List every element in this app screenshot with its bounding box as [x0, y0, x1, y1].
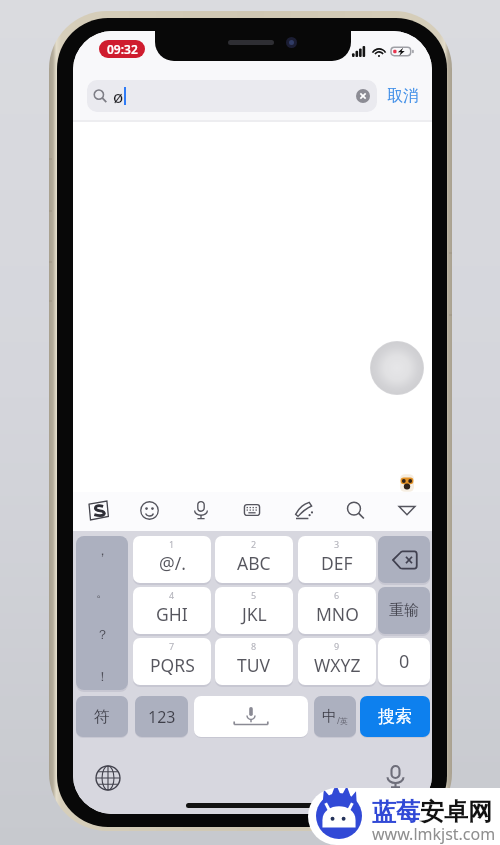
- staticText: www.lmkjst.com: [372, 823, 496, 845]
- staticText: 4: [169, 589, 175, 601]
- button[interactable]: WXYZ: [298, 638, 376, 685]
- button[interactable]: Keyboard tool: [287, 493, 321, 527]
- staticText: /英: [337, 715, 348, 726]
- staticText: 取消: [387, 86, 419, 106]
- button[interactable]: Keyboard tool: [184, 493, 218, 527]
- staticText: 搜索: [378, 706, 412, 727]
- button[interactable]: 0: [378, 638, 430, 685]
- staticText: 符: [94, 707, 110, 727]
- staticText: 1: [169, 538, 175, 550]
- button[interactable]: 搜索: [360, 696, 430, 737]
- button[interactable]: ø: [87, 80, 377, 112]
- button[interactable]: Switch keyboard language: [95, 765, 121, 791]
- button[interactable]: 123: [135, 696, 188, 737]
- staticText: ，: [96, 542, 109, 558]
- button[interactable]: 取消: [381, 83, 425, 109]
- staticText: 8: [251, 640, 257, 652]
- button[interactable]: Keyboard tool: [81, 493, 115, 527]
- staticText: 3: [334, 538, 340, 550]
- button[interactable]: Punctuation: [76, 536, 128, 690]
- staticText: 123: [148, 706, 176, 728]
- staticText: 6: [334, 589, 340, 601]
- staticText: 2: [251, 538, 257, 550]
- button[interactable]: Recording indicator: [99, 40, 145, 58]
- staticText: ABC: [237, 551, 271, 575]
- button[interactable]: Clear text: [356, 89, 370, 103]
- button[interactable]: 符: [76, 696, 128, 737]
- button[interactable]: Voice input: [383, 764, 408, 789]
- button[interactable]: Keyboard tool: [338, 493, 372, 527]
- staticText: 0: [399, 649, 410, 674]
- staticText: 中: [322, 707, 337, 726]
- staticText: @/.: [159, 551, 186, 575]
- button[interactable]: GHI: [133, 587, 211, 634]
- staticText: DEF: [321, 551, 353, 575]
- button[interactable]: @/.: [133, 536, 211, 583]
- staticText: 蓝莓: [372, 797, 420, 827]
- staticText: GHI: [156, 602, 188, 626]
- staticText: JKL: [242, 602, 267, 626]
- button[interactable]: Keyboard tool: [235, 493, 269, 527]
- staticText: ø: [113, 85, 124, 108]
- staticText: WXYZ: [314, 653, 361, 677]
- staticText: 。: [96, 584, 109, 600]
- staticText: PQRS: [150, 653, 195, 677]
- staticText: 安卓网: [420, 797, 492, 827]
- button[interactable]: Floating assistant ball: [370, 341, 424, 395]
- button[interactable]: Keyboard tool: [132, 493, 166, 527]
- staticText: TUV: [237, 653, 271, 677]
- button[interactable]: Space: [194, 696, 308, 737]
- staticText: 5: [251, 589, 257, 601]
- staticText: 7: [169, 640, 175, 652]
- button[interactable]: DEF: [298, 536, 376, 583]
- staticText: 重输: [389, 601, 419, 620]
- staticText: 09:32: [107, 41, 138, 57]
- button[interactable]: MNO: [298, 587, 376, 634]
- button[interactable]: Pet badge: [399, 473, 415, 493]
- button[interactable]: Keyboard tool: [390, 493, 424, 527]
- staticText: ？: [96, 626, 109, 642]
- button[interactable]: TUV: [215, 638, 293, 685]
- button[interactable]: 重输: [378, 587, 430, 634]
- staticText: ！: [96, 668, 109, 684]
- button[interactable]: 中英切换: [314, 696, 356, 737]
- button[interactable]: JKL: [215, 587, 293, 634]
- staticText: 9: [334, 640, 340, 652]
- button[interactable]: Backspace: [378, 536, 430, 583]
- button[interactable]: ABC: [215, 536, 293, 583]
- staticText: MNO: [316, 602, 359, 626]
- button[interactable]: PQRS: [133, 638, 211, 685]
